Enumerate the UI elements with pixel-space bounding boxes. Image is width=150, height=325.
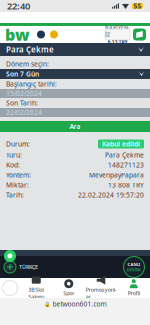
staticText: Yöntem:: [6, 171, 31, 179]
staticText: betwoon601.com: [52, 300, 106, 308]
button[interactable]: Spor: [52, 278, 85, 298]
button[interactable]: Ara: [0, 121, 150, 132]
button[interactable]: Son 7 Gün: [0, 69, 150, 79]
staticText: Profil: [128, 290, 140, 297]
staticText: Ara: [69, 122, 80, 131]
button[interactable]: 3B Slot Salonu: [20, 278, 52, 298]
button[interactable]: Deposit: [133, 28, 146, 40]
button[interactable]: CANLI: [123, 256, 145, 278]
staticText: CANLI: [127, 262, 140, 267]
staticText: DESTEK: [127, 267, 141, 272]
staticText: Para Çekme: [105, 151, 144, 159]
staticText: 🔒: [43, 301, 50, 307]
staticText: 15/02/2024: [6, 89, 42, 98]
button[interactable]: WhatsApp: [4, 250, 16, 262]
staticText: MevenpayPapara: [89, 171, 144, 179]
button[interactable]: 15/02/2024: [0, 89, 150, 98]
button[interactable]: BAKİYENİZ: [105, 29, 130, 40]
staticText: Tarih:: [6, 191, 24, 199]
staticText: 22:40: [7, 0, 30, 12]
button[interactable]: 22/02/2024: [0, 108, 150, 117]
button[interactable]: TÜRKÇE: [0, 261, 38, 273]
staticText: Miktar:: [6, 181, 29, 189]
staticText: Spor: [63, 290, 74, 297]
staticText: 148271123: [108, 161, 144, 169]
staticText: Kod:: [6, 161, 20, 169]
button[interactable]: Para Çekme: [0, 43, 150, 56]
staticText: BAKİYENİZ: [105, 24, 130, 38]
staticText: Son 7 Gün: [6, 70, 39, 78]
staticText: Son Tarih:: [6, 99, 38, 107]
staticText: Promosyonlar: [86, 286, 117, 300]
staticText: Durum:: [6, 140, 30, 148]
staticText: 6.13 TRY: [107, 38, 127, 45]
staticText: 3B Slot Salonu: [28, 286, 44, 300]
staticText: 13 808 TRY: [108, 181, 144, 189]
staticText: 55: [133, 2, 141, 10]
button[interactable]: Casino: [0, 278, 20, 298]
staticText: Para Çekme: [6, 44, 54, 55]
button[interactable]: Promosyonlar: [85, 278, 117, 298]
staticText: Türü:: [6, 151, 22, 159]
staticText: Dönem seçin:: [6, 60, 49, 68]
staticText: Başlangıç tarihi:: [6, 80, 57, 88]
staticText: bw: [5, 24, 30, 45]
staticText: 22.02.2024 19:57:20: [78, 191, 144, 199]
button[interactable]: Profil: [117, 278, 150, 298]
staticText: Kabul edildi: [102, 140, 140, 148]
staticText: TÜRKÇE: [19, 263, 38, 271]
staticText: 22/02/2024: [6, 108, 42, 117]
